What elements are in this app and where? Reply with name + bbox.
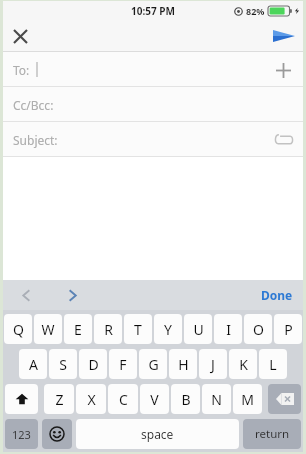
button[interactable]: C xyxy=(108,384,138,414)
staticText: Y xyxy=(164,320,172,339)
staticText: E xyxy=(74,320,82,339)
staticText: X xyxy=(87,390,96,409)
staticText: 123 xyxy=(12,427,31,442)
staticText: J xyxy=(211,355,215,374)
staticText: I xyxy=(226,320,231,339)
staticText: V xyxy=(150,390,159,409)
staticText: return xyxy=(255,426,290,442)
button[interactable]: V xyxy=(140,384,169,414)
button[interactable]: space xyxy=(76,419,239,449)
staticText: L xyxy=(269,355,277,374)
staticText: T xyxy=(134,320,142,339)
button[interactable]: X xyxy=(76,384,106,414)
staticText: F xyxy=(119,355,127,374)
staticText: C xyxy=(119,390,128,409)
button[interactable]: P xyxy=(274,314,302,344)
staticText: Subject: xyxy=(13,132,58,148)
staticText: R xyxy=(104,320,113,339)
staticText: G xyxy=(148,355,159,374)
button[interactable]: Attach file xyxy=(269,126,297,154)
button[interactable]: 123 xyxy=(5,419,38,449)
staticText: A xyxy=(29,355,38,374)
button[interactable]: B xyxy=(171,384,200,414)
staticText: Q xyxy=(13,320,24,339)
button[interactable]: Done xyxy=(255,284,299,306)
button[interactable]: Add contact xyxy=(269,56,297,84)
button[interactable]: I xyxy=(214,314,242,344)
staticText: S xyxy=(59,355,67,374)
staticText: U xyxy=(193,320,204,339)
button[interactable]: Subject: xyxy=(3,122,303,157)
staticText: 82% xyxy=(246,5,265,17)
button[interactable]: Q xyxy=(4,314,32,344)
button[interactable]: W xyxy=(34,314,62,344)
staticText: M xyxy=(241,390,254,409)
button[interactable]: Y xyxy=(154,314,182,344)
staticText: N xyxy=(211,390,222,409)
button[interactable]: Backspace xyxy=(268,384,301,414)
staticText: space xyxy=(141,426,174,442)
button[interactable]: U xyxy=(184,314,212,344)
button[interactable]: Close xyxy=(3,20,37,52)
button[interactable]: Shift xyxy=(5,384,38,414)
staticText: Cc/Bcc: xyxy=(13,97,54,113)
button[interactable]: K xyxy=(229,349,257,379)
button[interactable]: Emoji xyxy=(42,419,72,449)
staticText: D xyxy=(88,355,99,374)
button[interactable]: S xyxy=(49,349,77,379)
staticText: To: xyxy=(13,62,30,78)
button[interactable]: L xyxy=(259,349,287,379)
staticText: Z xyxy=(55,390,64,409)
button[interactable]: G xyxy=(139,349,167,379)
button[interactable]: D xyxy=(79,349,107,379)
staticText: 10:57 PM xyxy=(131,4,175,18)
button[interactable]: Send xyxy=(265,20,303,52)
button[interactable]: R xyxy=(94,314,122,344)
button[interactable]: H xyxy=(169,349,197,379)
button[interactable]: J xyxy=(199,349,227,379)
button[interactable]: N xyxy=(202,384,231,414)
button[interactable]: O xyxy=(244,314,272,344)
staticText: P xyxy=(284,320,293,339)
button[interactable]: T xyxy=(124,314,152,344)
button[interactable]: Next field xyxy=(57,280,87,310)
staticText: K xyxy=(239,355,248,374)
button[interactable]: F xyxy=(109,349,137,379)
button[interactable]: E xyxy=(64,314,92,344)
button[interactable]: To: xyxy=(3,52,303,87)
button[interactable]: return xyxy=(243,419,301,449)
staticText: H xyxy=(178,355,189,374)
button[interactable]: Previous field xyxy=(11,280,41,310)
button[interactable]: Cc/Bcc: xyxy=(3,87,303,122)
staticText: W xyxy=(41,320,55,339)
staticText: O xyxy=(253,320,264,339)
staticText: Done xyxy=(261,287,293,303)
button[interactable]: Z xyxy=(44,384,74,414)
button[interactable]: A xyxy=(19,349,47,379)
staticText: B xyxy=(181,390,191,409)
button[interactable]: M xyxy=(233,384,262,414)
